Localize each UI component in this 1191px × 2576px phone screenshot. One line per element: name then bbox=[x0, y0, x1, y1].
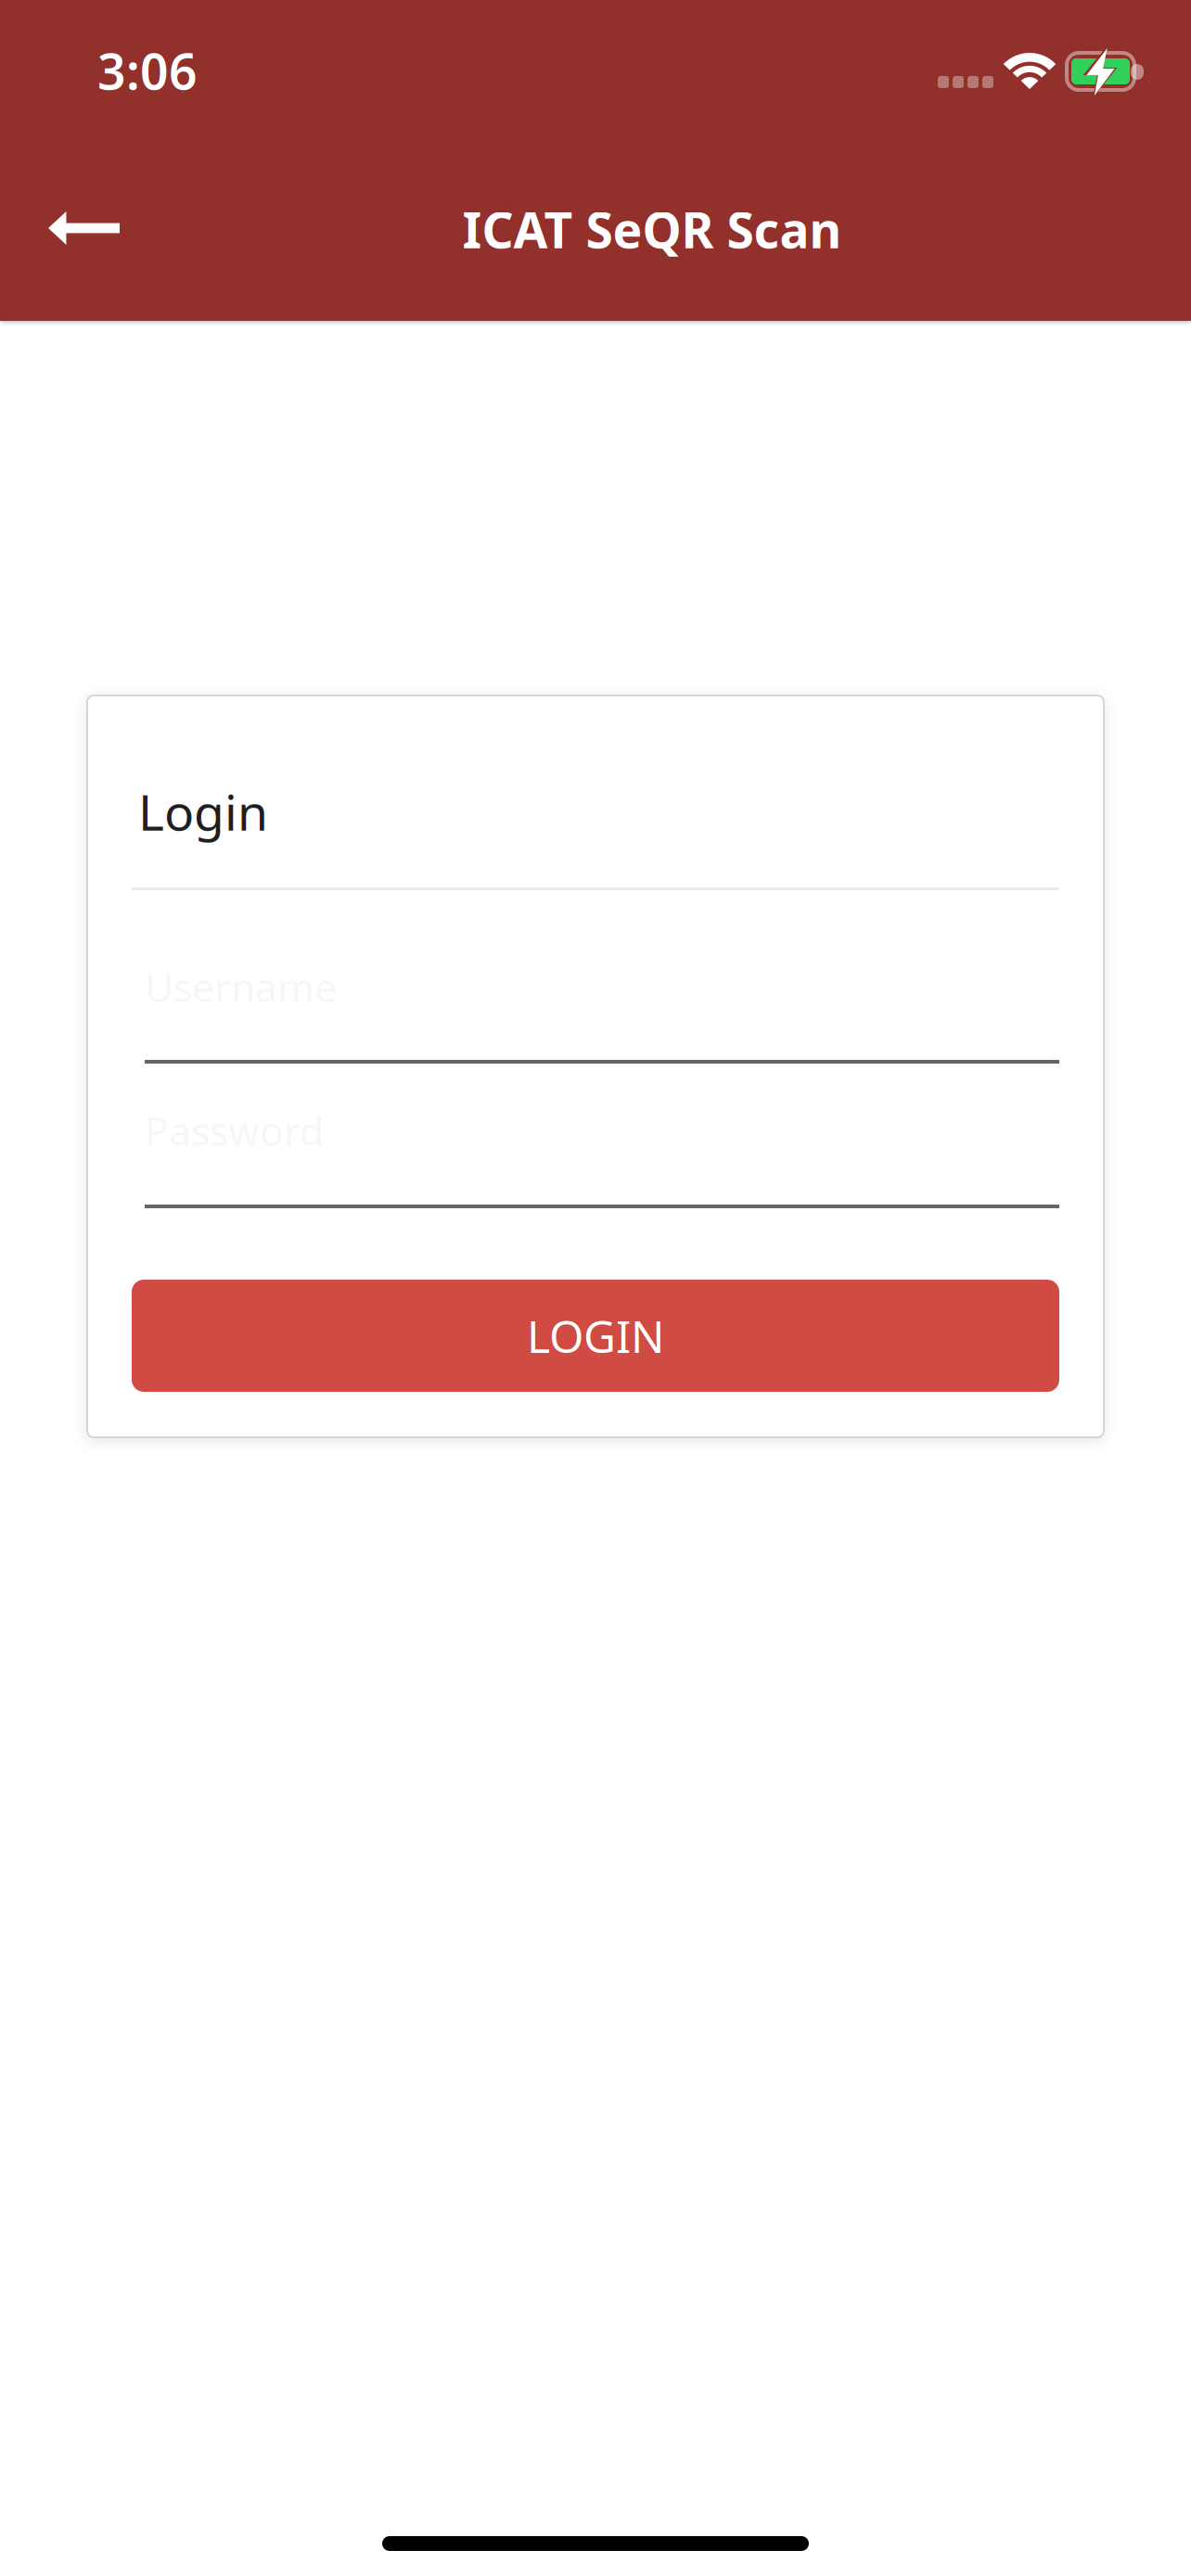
staticText: 3:06 bbox=[97, 38, 198, 103]
staticText: Login bbox=[138, 779, 268, 844]
button[interactable]: Back bbox=[0, 181, 161, 281]
button[interactable]: Password bbox=[145, 1111, 1059, 1208]
staticText: Password bbox=[145, 1104, 324, 1157]
staticText: ICAT SeQR Scan bbox=[462, 196, 842, 262]
staticText: LOGIN bbox=[527, 1306, 664, 1365]
button[interactable]: LOGIN bbox=[132, 1280, 1059, 1392]
button[interactable]: Username bbox=[145, 967, 1059, 1064]
